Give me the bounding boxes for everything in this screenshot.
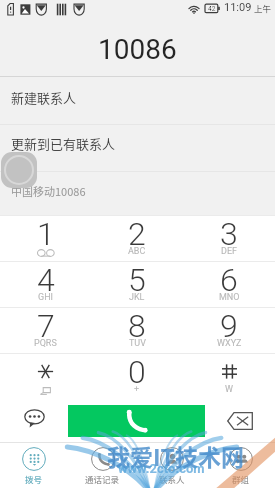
staticText: 10086: [98, 33, 177, 66]
staticText: W: [225, 384, 233, 395]
staticText: JKL: [129, 292, 145, 303]
staticText: 1: [37, 215, 55, 253]
staticText: 3: [220, 215, 238, 253]
staticText: ABC: [128, 246, 146, 257]
staticText: TUV: [129, 338, 146, 349]
button[interactable]: 5: [91, 262, 183, 307]
staticText: MNO: [219, 292, 240, 303]
button[interactable]: Call: [68, 405, 205, 437]
staticText: 中国移动10086: [11, 183, 86, 199]
staticText: +: [134, 384, 140, 395]
staticText: 我爱IT技术网: [107, 439, 244, 472]
staticText: PQRS: [34, 338, 57, 349]
staticText: 群组: [232, 473, 250, 485]
button[interactable]: 7: [0, 308, 91, 353]
staticText: GHI: [38, 292, 53, 303]
staticText: 更新到已有联系人: [11, 134, 116, 153]
button[interactable]: 0: [91, 354, 183, 399]
button[interactable]: 4: [0, 262, 91, 307]
staticText: 通话记录: [85, 473, 120, 485]
button[interactable]: 通话记录: [68, 443, 137, 488]
button[interactable]: 更新到已有联系人: [0, 125, 275, 171]
button[interactable]: 1: [0, 216, 91, 261]
staticText: 8: [128, 307, 146, 345]
button[interactable]: 新建联系人: [0, 77, 275, 124]
button[interactable]: 2: [91, 216, 183, 261]
staticText: 4: [37, 261, 55, 299]
button[interactable]: 8: [91, 308, 183, 353]
button[interactable]: 联系人: [137, 443, 206, 488]
staticText: 42: [208, 5, 216, 13]
staticText: 2: [128, 215, 146, 253]
staticText: 11:09: [224, 1, 252, 14]
button[interactable]: 9: [183, 308, 275, 353]
staticText: 联系人: [159, 473, 185, 485]
staticText: 新建联系人: [11, 88, 77, 107]
staticText: 9: [220, 307, 238, 345]
staticText: 0: [128, 353, 146, 391]
button[interactable]: Send message: [0, 399, 68, 442]
button[interactable]: 群组: [206, 443, 275, 488]
staticText: 拨号: [25, 473, 43, 485]
staticText: 上午: [254, 2, 272, 14]
staticText: 6: [220, 261, 238, 299]
button[interactable]: 3: [183, 216, 275, 261]
button[interactable]: W: [183, 354, 275, 399]
button[interactable]: Delete: [205, 399, 275, 442]
button[interactable]: 拨号: [0, 443, 68, 488]
staticText: 5: [128, 261, 146, 299]
button[interactable]: 6: [183, 262, 275, 307]
staticText: www.2cto.com: [118, 461, 205, 476]
staticText: DEF: [221, 246, 237, 257]
button[interactable]: [0, 354, 91, 399]
staticText: 7: [37, 307, 55, 345]
staticText: WXYZ: [217, 338, 242, 349]
